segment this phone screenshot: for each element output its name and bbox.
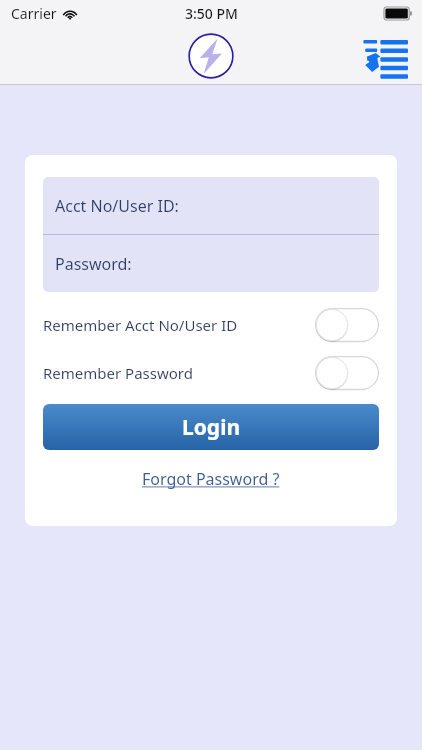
staticText: Password: [55, 253, 132, 275]
button[interactable]: Remember Password [43, 356, 379, 390]
button[interactable]: Acct No/User ID: [43, 177, 379, 234]
staticText: Login [182, 413, 241, 442]
staticText: Acct No/User ID: [55, 195, 179, 217]
button[interactable]: Login [43, 404, 379, 450]
staticText: 3:50 PM [185, 4, 238, 23]
button[interactable]: Password: [43, 235, 379, 292]
button[interactable]: PVEC logo [185, 30, 237, 82]
button[interactable]: Forgot Password ? [43, 468, 379, 490]
staticText: Forgot Password ? [142, 468, 280, 490]
button[interactable]: Remember Acct No/User ID [43, 308, 379, 342]
button[interactable]: Toggle [315, 308, 379, 342]
staticText: Remember Acct No/User ID [43, 315, 238, 335]
button[interactable]: Toggle [315, 356, 379, 390]
staticText: Remember Password [43, 363, 193, 383]
staticText: Carrier [11, 4, 57, 23]
button[interactable]: Menu [362, 37, 408, 75]
